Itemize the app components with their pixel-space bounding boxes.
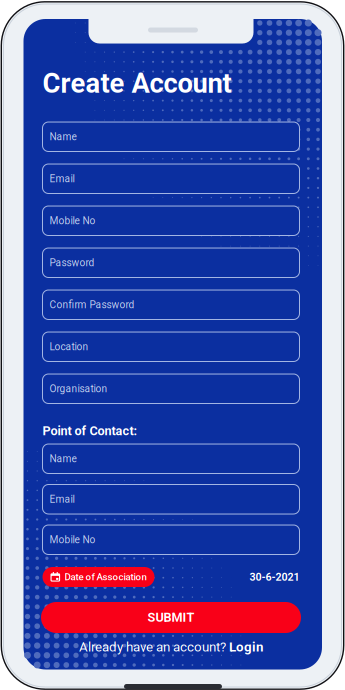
staticText: Email <box>49 173 74 185</box>
staticText: Point of Contact: <box>42 424 137 438</box>
button[interactable]: Mobile No <box>42 525 299 554</box>
button[interactable]: Name <box>42 444 299 473</box>
button[interactable]: Password <box>42 248 299 277</box>
button[interactable]: Date of Association <box>42 567 154 587</box>
staticText: Location <box>49 341 88 353</box>
button[interactable]: Already have an account? <box>79 639 263 655</box>
staticText: SUBMIT <box>147 610 194 625</box>
button[interactable]: Email <box>42 484 299 514</box>
button[interactable]: SUBMIT <box>41 602 301 633</box>
button[interactable]: Mobile No <box>42 206 299 235</box>
button[interactable]: Confirm Password <box>42 290 299 319</box>
staticText: Password <box>49 257 94 269</box>
staticText: Email <box>49 493 74 505</box>
staticText: Already have an account? <box>79 639 226 655</box>
staticText: Organisation <box>49 383 107 395</box>
staticText: Mobile No <box>49 534 95 546</box>
button[interactable]: Name <box>42 122 299 151</box>
staticText: Mobile No <box>49 215 95 227</box>
staticText: 30-6-2021 <box>249 571 299 583</box>
staticText: Name <box>49 453 76 465</box>
staticText: Name <box>49 131 76 143</box>
button[interactable]: Email <box>42 164 299 193</box>
staticText: Create Account <box>42 67 231 99</box>
button[interactable]: Location <box>42 332 299 361</box>
staticText: Login <box>229 639 263 655</box>
button[interactable]: Organisation <box>42 374 299 403</box>
staticText: Confirm Password <box>49 299 134 311</box>
staticText: Date of Association <box>64 571 146 583</box>
